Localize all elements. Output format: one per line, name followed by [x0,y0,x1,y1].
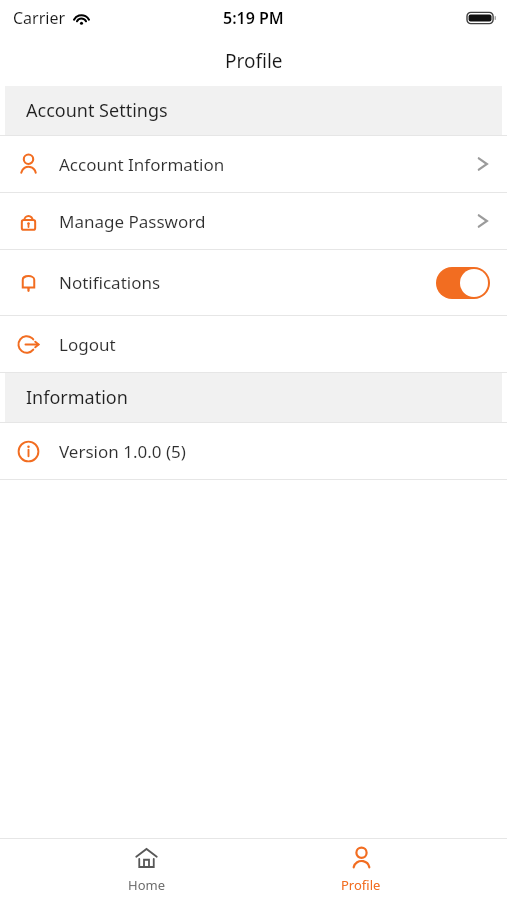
button[interactable]: Account Information [0,136,507,192]
staticText: Logout [59,333,116,356]
staticText: Account Settings [26,98,168,123]
staticText: 5:19 PM [223,7,284,29]
button[interactable]: Version 1.0.0 (5) [0,423,507,479]
staticText: Profile [225,48,283,74]
button[interactable]: Manage Password [0,193,507,249]
button[interactable]: Notifications [0,250,507,315]
staticText: Carrier [13,7,66,29]
staticText: Home [128,876,165,894]
button[interactable]: Logout [0,316,507,372]
staticText: Manage Password [59,210,206,233]
staticText: Account Information [59,153,225,176]
button[interactable]: Profile [291,839,431,900]
staticText: Information [26,385,128,410]
staticText: Version 1.0.0 (5) [59,440,186,463]
staticText: Profile [341,876,381,894]
button[interactable]: Home [76,839,216,900]
staticText: Notifications [59,271,161,294]
button[interactable]: Notifications toggle [436,267,490,299]
